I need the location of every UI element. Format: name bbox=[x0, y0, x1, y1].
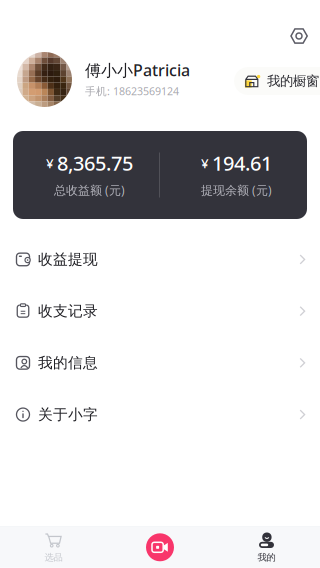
staticText: 关于小字 bbox=[38, 405, 98, 423]
button[interactable]: 收益提现 bbox=[0, 234, 320, 285]
staticText: ¥ bbox=[201, 154, 209, 172]
staticText: 8,365.75 bbox=[57, 150, 133, 176]
staticText: 我的橱窗 bbox=[267, 73, 319, 89]
staticText: 选品 bbox=[44, 552, 62, 563]
staticText: 提现余额 (元) bbox=[201, 182, 272, 198]
button[interactable]: 收支记录 bbox=[0, 285, 320, 337]
button[interactable]: 我的信息 bbox=[0, 337, 320, 389]
staticText: ¥ bbox=[46, 154, 54, 172]
staticText: 我的 bbox=[257, 552, 275, 563]
button[interactable]: 关于小字 bbox=[0, 389, 320, 440]
button[interactable]: 我的 bbox=[213, 527, 320, 568]
staticText: 傅小小Patricia bbox=[85, 59, 190, 81]
staticText: 手机: 18623569124 bbox=[85, 84, 179, 98]
staticText: 194.61 bbox=[212, 150, 272, 176]
button[interactable]: Record video bbox=[107, 527, 213, 568]
staticText: 我的信息 bbox=[38, 354, 98, 372]
button[interactable]: 我的橱窗 bbox=[234, 67, 320, 95]
staticText: 收支记录 bbox=[38, 302, 98, 320]
staticText: 收益提现 bbox=[38, 250, 98, 268]
button[interactable]: 选品 bbox=[0, 527, 107, 568]
staticText: 总收益额 (元) bbox=[54, 182, 125, 198]
button[interactable]: Settings bbox=[282, 19, 316, 53]
